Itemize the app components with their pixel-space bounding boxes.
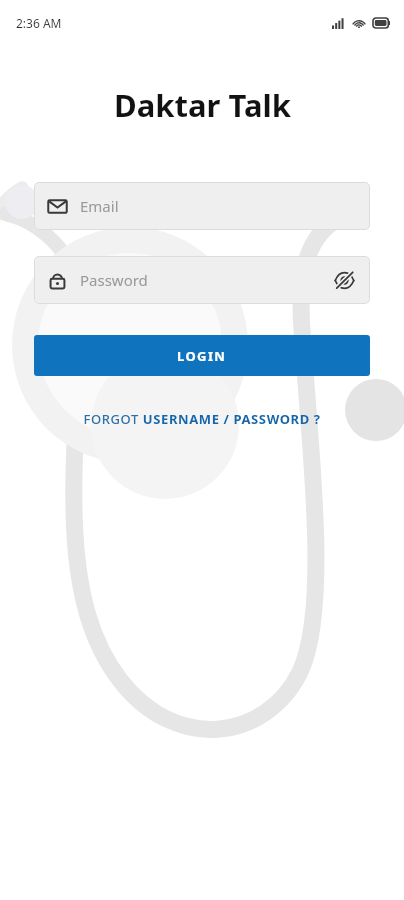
button[interactable]: LOGIN: [34, 335, 370, 376]
staticText: Email: [80, 196, 119, 216]
staticText: Password: [80, 270, 148, 290]
button[interactable]: Show password: [331, 267, 357, 293]
button[interactable]: Password: [34, 256, 370, 304]
button[interactable]: Email: [34, 182, 370, 230]
staticText: FORGOT USERNAME / PASSWORD ?: [83, 410, 321, 428]
staticText: Daktar Talk: [114, 84, 291, 126]
button[interactable]: FORGOT USERNAME / PASSWORD ?: [73, 406, 331, 432]
staticText: 2:36 AM: [16, 15, 62, 31]
staticText: LOGIN: [177, 347, 227, 365]
